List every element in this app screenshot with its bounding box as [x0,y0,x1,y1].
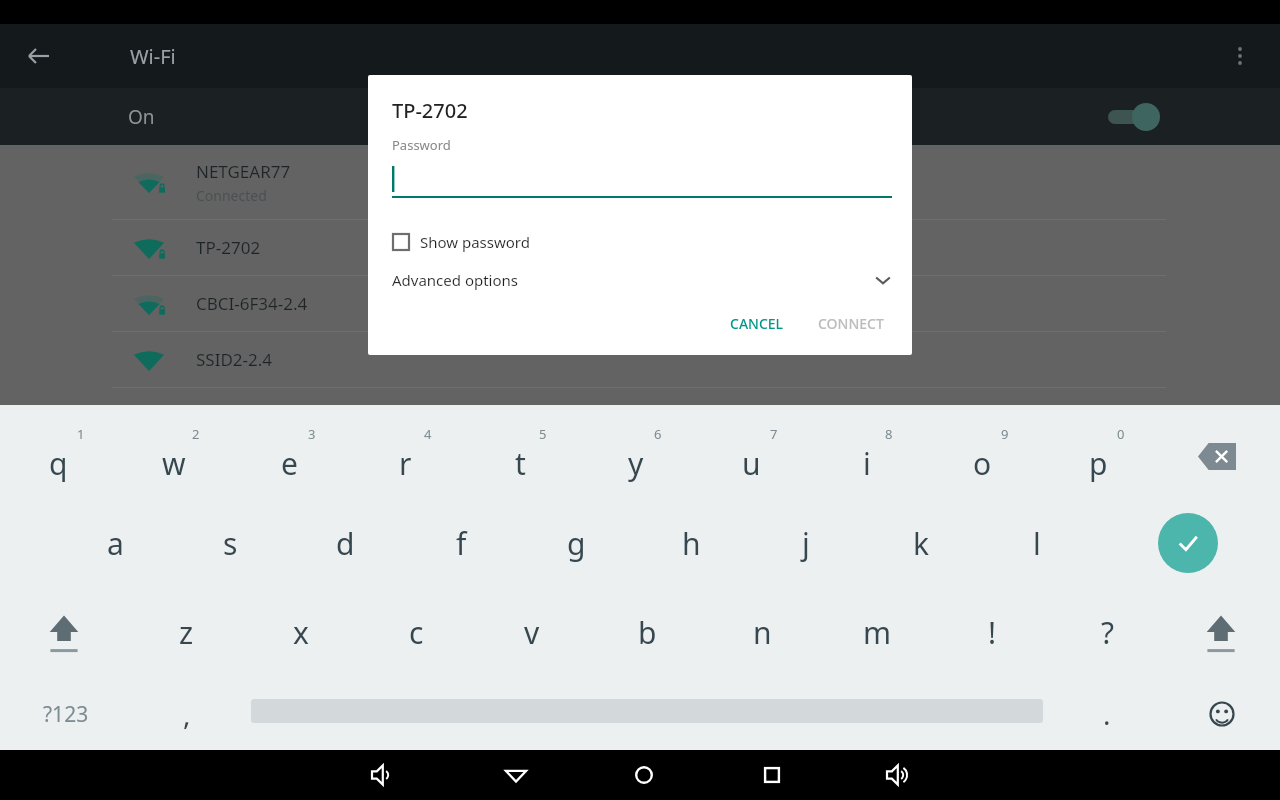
button[interactable]: CONNECT [808,306,894,341]
button[interactable]: ! [942,593,1042,671]
button[interactable]: Wi-Fi toggle [1106,100,1162,134]
staticText: 9 [1001,425,1009,443]
button[interactable]: n [712,593,812,671]
button[interactable]: ? [1058,593,1158,671]
button[interactable]: CANCEL [720,306,794,341]
button[interactable]: Emoji [1178,683,1266,745]
button[interactable]: SSID2-2.4 [0,332,1280,387]
button[interactable]: TP-2702 [0,220,1280,275]
staticText: y [628,443,644,484]
button[interactable]: s [180,503,280,583]
button[interactable]: h [641,503,741,583]
staticText: Password [392,136,451,154]
button[interactable]: NETGEAR77 [0,145,1280,219]
button[interactable]: CBCI-6F34-2.4 [0,276,1280,331]
staticText: n [753,612,772,653]
staticText: e [281,443,298,484]
staticText: s [223,523,238,564]
button[interactable]: k [871,503,971,583]
staticText: u [742,443,761,484]
staticText: TP-2702 [392,97,468,124]
button[interactable]: Backspace [1172,427,1262,485]
button[interactable]: 1 [8,413,108,495]
button[interactable]: Recents [748,750,796,800]
staticText: a [107,523,124,564]
button[interactable]: 2 [124,413,224,495]
button[interactable]: b [597,593,697,671]
button[interactable]: m [827,593,927,671]
button[interactable]: 7 [701,413,801,495]
staticText: 6 [654,425,662,443]
staticText: CBCI-6F34-2.4 [196,292,308,315]
button[interactable]: z [136,593,236,671]
button[interactable]: Show password [392,228,530,256]
button[interactable]: Volume up [875,750,923,800]
staticText: x [293,612,309,653]
button[interactable]: d [295,503,395,583]
staticText: b [638,612,657,653]
staticText: c [409,612,424,653]
staticText: , [183,695,191,733]
staticText: g [567,523,586,564]
staticText: NETGEAR77 [196,160,291,183]
button[interactable]: l [987,503,1087,583]
button[interactable]: v [482,593,582,671]
staticText: t [515,443,526,484]
staticText: i [863,443,871,484]
button[interactable]: Volume down [360,750,408,800]
button[interactable]: Shift [1175,595,1267,671]
staticText: l [1033,523,1041,564]
staticText: ?123 [43,700,89,729]
staticText: TP-2702 [196,236,261,259]
button[interactable]: , [142,683,232,745]
button[interactable]: ?123 [20,683,112,745]
staticText: 8 [885,425,893,443]
staticText: On [128,104,155,130]
button[interactable]: 0 [1048,413,1148,495]
staticText: o [973,443,992,484]
staticText: 5 [539,425,547,443]
button[interactable] [392,162,892,198]
button[interactable]: x [251,593,351,671]
staticText: w [162,443,186,484]
staticText: r [399,443,412,484]
staticText: z [179,612,194,653]
staticText: 2 [192,425,200,443]
staticText: p [1089,443,1108,484]
button[interactable]: g [526,503,626,583]
button[interactable]: More options [1220,36,1260,76]
button[interactable]: 3 [239,413,339,495]
button[interactable]: Shift [18,595,110,671]
button[interactable]: Back [18,36,58,76]
staticText: q [49,443,68,484]
button[interactable]: 8 [817,413,917,495]
button[interactable]: 9 [932,413,1032,495]
staticText: . [1103,695,1111,733]
button[interactable]: Advanced options [392,264,892,296]
staticText: SSID2-2.4 [196,348,273,371]
button[interactable]: Hide keyboard [492,750,540,800]
button[interactable]: 4 [355,413,455,495]
staticText: 7 [770,425,778,443]
staticText: d [336,523,355,564]
staticText: Wi-Fi [130,43,176,70]
button[interactable]: Enter [1158,513,1218,573]
button[interactable]: 5 [470,413,570,495]
staticText: j [802,523,810,564]
staticText: Advanced options [392,270,519,290]
button[interactable]: Home [620,750,668,800]
staticText: 4 [424,425,432,443]
staticText: CONNECT [818,314,884,333]
button[interactable]: a [65,503,165,583]
button[interactable]: j [756,503,856,583]
button[interactable]: f [411,503,511,583]
staticText: ? [1101,612,1115,653]
button[interactable]: c [366,593,466,671]
button[interactable]: . [1062,683,1152,745]
staticText: 0 [1117,425,1125,443]
staticText: 3 [308,425,316,443]
button[interactable]: 6 [586,413,686,495]
staticText: k [913,523,930,564]
staticText: h [682,523,701,564]
